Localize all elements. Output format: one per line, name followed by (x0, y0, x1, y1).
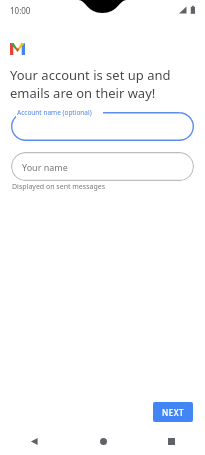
staticText: 10:00 (10, 5, 31, 16)
button[interactable]: Home (69, 428, 137, 455)
staticText: NEXT (162, 407, 185, 418)
button[interactable]: NEXT (153, 402, 193, 422)
staticText: Displayed on sent messages (12, 182, 106, 192)
staticText: Your account is set up and emails are on… (10, 66, 196, 102)
staticText: Your name (22, 161, 68, 173)
button[interactable]: Back (0, 428, 69, 455)
button[interactable]: Account name (optional) (11, 112, 194, 141)
staticText: Account name (optional) (17, 108, 92, 117)
button[interactable]: Recent apps (137, 428, 205, 455)
button[interactable]: Your name (11, 152, 194, 181)
